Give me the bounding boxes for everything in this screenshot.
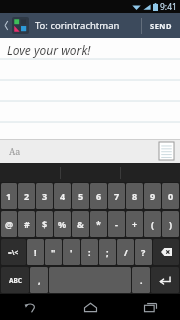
button[interactable]: Love your work! [0,38,180,139]
staticText: Love your work! [7,42,91,58]
button[interactable]: ; [99,239,116,265]
staticText: 7 [114,190,120,202]
staticText: % [58,218,67,230]
staticText: 1 [6,190,12,202]
button[interactable]: 4 [54,183,71,209]
button[interactable]: , [30,267,48,293]
staticText: 5 [78,190,84,202]
button[interactable]: : [81,239,98,265]
button[interactable]: Home [60,294,120,320]
staticText: " [51,246,56,258]
staticText: + [132,218,138,230]
button[interactable]: Paper style [159,142,174,160]
staticText: ? [141,246,146,258]
button[interactable]: & [72,211,89,237]
staticText: : [88,246,91,258]
staticText: ( [151,218,155,230]
button[interactable]: 8 [126,183,143,209]
button[interactable]: Backspace [153,239,179,265]
button[interactable]: 7 [108,183,125,209]
button[interactable]: @ [1,211,17,237]
button[interactable]: 5 [72,183,89,209]
button[interactable]: ' [63,239,80,265]
button[interactable]: % [54,211,71,237]
button[interactable]: Font style [0,139,30,163]
staticText: * [96,218,101,230]
staticText: - [115,218,118,230]
button[interactable]: App icon [12,17,29,34]
staticText: 9 [150,190,156,202]
button[interactable]: 0 [162,183,179,209]
staticText: ; [106,246,109,258]
button[interactable]: 3 [36,183,53,209]
button[interactable]: ( [144,211,161,237]
button[interactable]: 6 [90,183,107,209]
staticText: & [77,218,84,230]
button[interactable]: Back [0,294,60,320]
button[interactable]: 2 [18,183,35,209]
staticText: . [140,274,143,286]
button[interactable]: ABC [1,267,29,293]
staticText: ! [34,246,37,258]
staticText: =\< [8,248,19,257]
button[interactable]: ) [162,211,179,237]
staticText: SEND [150,21,172,31]
staticText: ABC [9,276,22,285]
button[interactable]: $ [36,211,53,237]
button[interactable]: * [90,211,107,237]
staticText: ) [169,218,173,230]
button[interactable]: ? [135,239,152,265]
button[interactable]: =\< [1,239,26,265]
button[interactable]: " [45,239,62,265]
staticText: 6 [96,190,102,202]
staticText: 9:41 [160,1,177,13]
staticText: 2 [24,190,30,202]
button[interactable]: . [132,267,150,293]
staticText: @ [5,218,14,230]
button[interactable]: / [117,239,134,265]
staticText: To: corintrachtman [35,19,120,32]
staticText: / [124,246,128,258]
staticText: 0 [168,190,174,202]
button[interactable]: 9 [144,183,161,209]
staticText: , [38,274,41,286]
button[interactable]: Enter [151,267,179,293]
staticText: 3 [42,190,48,202]
staticText: $ [42,218,48,230]
button[interactable]: SEND [142,13,180,38]
staticText: Aa [9,145,21,157]
button[interactable]: - [108,211,125,237]
button[interactable]: Back [0,13,12,38]
button[interactable]: 1 [1,183,17,209]
staticText: ' [70,246,73,258]
button[interactable]: # [18,211,35,237]
button[interactable]: + [126,211,143,237]
button[interactable]: Recents [120,294,180,320]
staticText: 8 [132,190,138,202]
staticText: # [24,218,30,230]
button[interactable]: ! [27,239,44,265]
staticText: 4 [60,190,66,202]
